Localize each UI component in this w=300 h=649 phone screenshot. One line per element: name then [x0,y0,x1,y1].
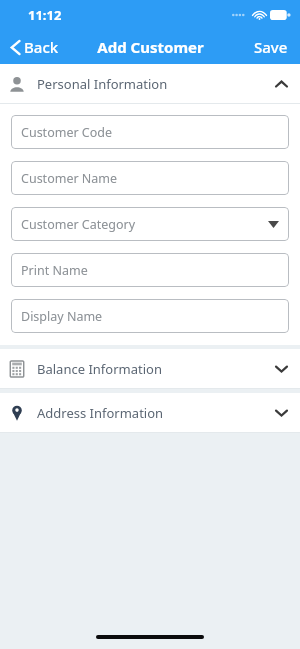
staticText: Customer Category [21,216,136,233]
staticText: Add Customer [97,37,204,57]
button[interactable]: Balance Information [0,349,300,388]
staticText: Save [254,37,288,57]
staticText: Print Name [21,262,88,279]
staticText: 11:12 [28,6,62,24]
staticText: Balance Information [37,360,162,378]
button[interactable]: Print Name [11,253,289,287]
button[interactable]: Display Name [11,299,289,333]
button[interactable]: Customer Code [11,115,289,149]
button[interactable]: Personal Information [0,64,300,103]
staticText: Customer Code [21,124,113,141]
button[interactable]: Customer Category [11,207,289,241]
button[interactable]: Address Information [0,393,300,432]
staticText: Back [24,37,59,57]
staticText: Address Information [37,404,164,422]
button[interactable]: Back [8,33,62,61]
staticText: Customer Name [21,170,118,187]
button[interactable]: Customer Name [11,161,289,195]
button[interactable]: Save [250,33,292,61]
staticText: Display Name [21,308,103,325]
staticText: Personal Information [37,75,168,93]
